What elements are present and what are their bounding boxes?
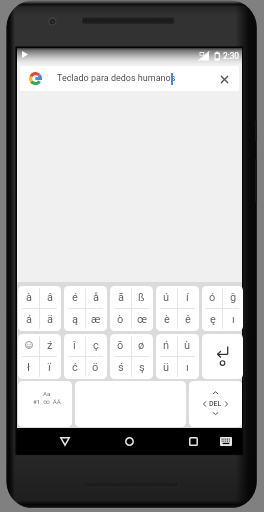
staticText: ı (232, 313, 235, 326)
staticText: ń (163, 339, 170, 352)
button[interactable]: ō (110, 334, 153, 379)
staticText: á (26, 313, 32, 326)
staticText: í (186, 291, 189, 304)
staticText: æ (91, 313, 101, 326)
staticText: ö (92, 361, 99, 374)
staticText: ï (48, 361, 51, 374)
staticText: ı (186, 361, 189, 374)
staticText: ç (93, 339, 99, 352)
button[interactable]: Delete (189, 381, 242, 427)
button[interactable]: Clear search (216, 69, 232, 89)
staticText: ş (139, 361, 145, 374)
staticText: ù (184, 339, 191, 352)
staticText: ā (118, 291, 124, 304)
button[interactable]: Recent apps (177, 428, 209, 454)
staticText: ò (117, 313, 124, 326)
button[interactable]: à (18, 286, 61, 331)
staticText: à (26, 291, 32, 304)
staticText: ß (138, 291, 145, 304)
button[interactable]: Symbols (18, 381, 72, 427)
button[interactable]: Teclado para dedos humanos (20, 66, 239, 91)
staticText: å (93, 291, 99, 304)
staticText: ć (72, 361, 78, 374)
button[interactable]: ń (156, 334, 199, 379)
staticText: ó (209, 291, 216, 304)
staticText: ł (27, 361, 30, 374)
staticText: ō (117, 339, 124, 352)
staticText: Aa (43, 390, 51, 397)
button[interactable]: ź (18, 334, 61, 379)
staticText: ü (163, 361, 170, 374)
staticText: ú (163, 291, 170, 304)
staticText: ê (185, 313, 191, 326)
button[interactable]: ó (202, 286, 243, 331)
staticText: ś (118, 361, 124, 374)
staticText: ą (72, 313, 78, 326)
staticText: â (47, 291, 53, 304)
button[interactable]: Home (113, 428, 145, 454)
staticText: ę (210, 313, 216, 326)
staticText: î (73, 339, 76, 352)
button[interactable]: Enter (202, 334, 243, 379)
staticText: ğ (230, 291, 237, 304)
staticText: #1 ∞ ÄÄ (33, 398, 61, 405)
button[interactable]: ā (110, 286, 153, 331)
staticText: ä (47, 313, 53, 326)
button[interactable]: Switch keyboard (210, 428, 242, 454)
staticText: Teclado para dedos humanos (57, 73, 176, 84)
staticText: DEL (209, 400, 222, 408)
staticText: è (164, 313, 170, 326)
staticText: 2:30 (223, 51, 239, 61)
button[interactable]: ú (156, 286, 199, 331)
staticText: ø (138, 339, 145, 352)
button[interactable]: î (64, 334, 107, 379)
staticText: ź (47, 339, 53, 352)
button[interactable]: Back (49, 428, 81, 454)
button[interactable]: é (64, 286, 107, 331)
staticText: œ (137, 313, 147, 326)
staticText: é (72, 291, 78, 304)
